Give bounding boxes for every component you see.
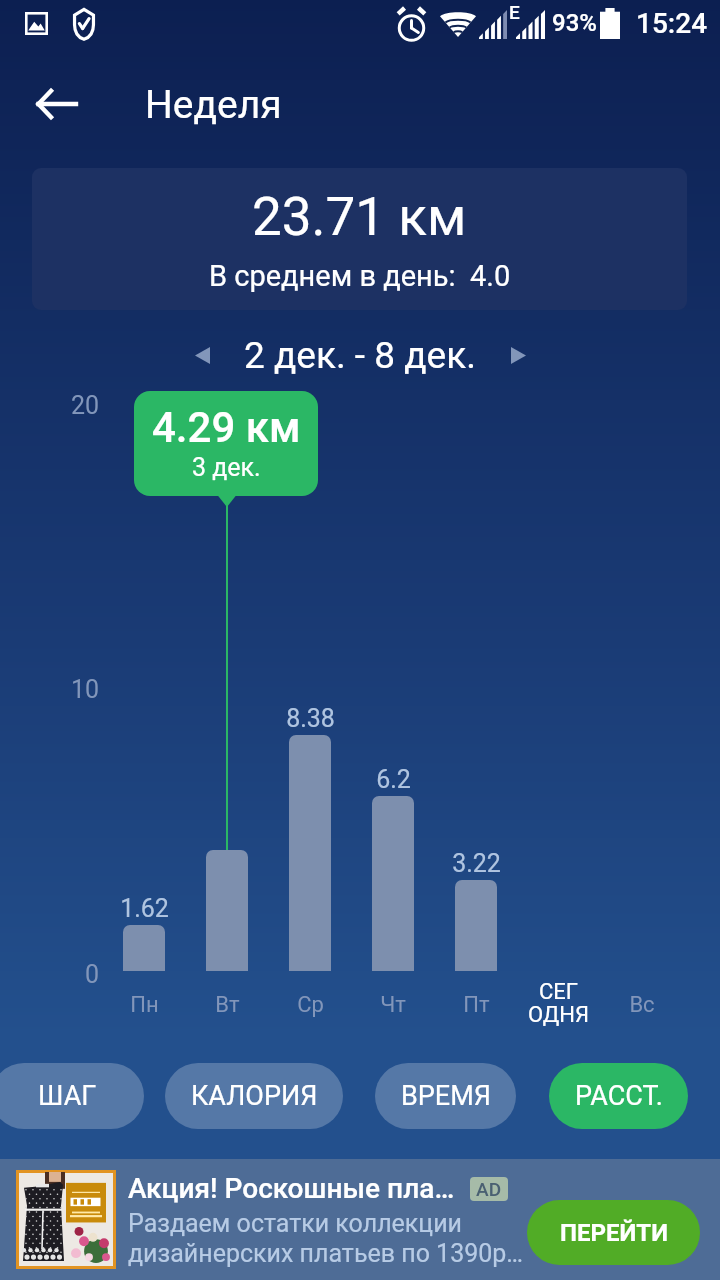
button[interactable] <box>123 925 165 971</box>
staticText: 6.2 <box>376 765 411 794</box>
button[interactable]: РАССТ. <box>549 1063 688 1129</box>
button[interactable]: Advertisement <box>470 1177 508 1201</box>
staticText: КАЛОРИЯ <box>191 1080 318 1112</box>
staticText: ОДНЯ <box>528 1002 590 1028</box>
staticText: 2 дек. - 8 дек. <box>244 334 476 377</box>
staticText: ШАГ <box>38 1080 97 1112</box>
staticText: 20 <box>70 391 99 420</box>
staticText: ВРЕМЯ <box>401 1080 491 1112</box>
staticText: Вс <box>629 992 655 1018</box>
staticText: 3.22 <box>452 849 501 878</box>
staticText: Пт <box>463 992 490 1018</box>
button[interactable]: Next week <box>494 332 542 378</box>
button[interactable]: КАЛОРИЯ <box>165 1063 343 1129</box>
staticText: Неделя <box>145 82 282 128</box>
button[interactable]: Back <box>28 76 84 132</box>
button[interactable]: 23.71 км <box>32 168 687 310</box>
staticText: СЕГ <box>539 979 579 1005</box>
staticText: В среднем в день: 4.0 <box>209 259 511 293</box>
button[interactable]: Previous week <box>178 332 226 378</box>
staticText: 4.29 км <box>152 403 301 452</box>
button[interactable]: Advertisement image <box>16 1170 116 1269</box>
button[interactable] <box>372 796 414 971</box>
button[interactable]: 4.29 км <box>134 391 318 507</box>
staticText: Пн <box>130 992 159 1018</box>
button[interactable]: ВРЕМЯ <box>375 1063 516 1129</box>
staticText: Чт <box>380 992 406 1018</box>
staticText: 3 дек. <box>192 453 261 482</box>
staticText: Раздаем остатки коллекции <box>128 1209 463 1238</box>
staticText: AD <box>476 1178 502 1200</box>
staticText: РАССТ. <box>575 1080 663 1112</box>
staticText: дизайнерских платьев по 1390р… <box>128 1239 524 1268</box>
staticText: 15:24 <box>636 7 708 40</box>
staticText: 10 <box>70 675 99 704</box>
button[interactable]: ПЕРЕЙТИ <box>527 1200 700 1265</box>
button[interactable] <box>455 880 497 971</box>
button[interactable] <box>289 735 331 971</box>
staticText: 0 <box>84 960 99 989</box>
staticText: 23.71 км <box>252 186 467 248</box>
staticText: E <box>509 1 520 23</box>
button[interactable]: ШАГ <box>0 1063 144 1129</box>
staticText: Акция! Роскошные пла… <box>128 1172 455 1205</box>
button[interactable]: Advertisement image <box>0 1159 720 1280</box>
staticText: 1.62 <box>120 894 169 923</box>
staticText: ПЕРЕЙТИ <box>560 1219 668 1247</box>
button[interactable] <box>206 850 248 971</box>
staticText: Ср <box>297 992 324 1018</box>
staticText: 8.38 <box>286 704 335 733</box>
staticText: 93% <box>552 9 597 37</box>
staticText: Вт <box>215 992 240 1018</box>
